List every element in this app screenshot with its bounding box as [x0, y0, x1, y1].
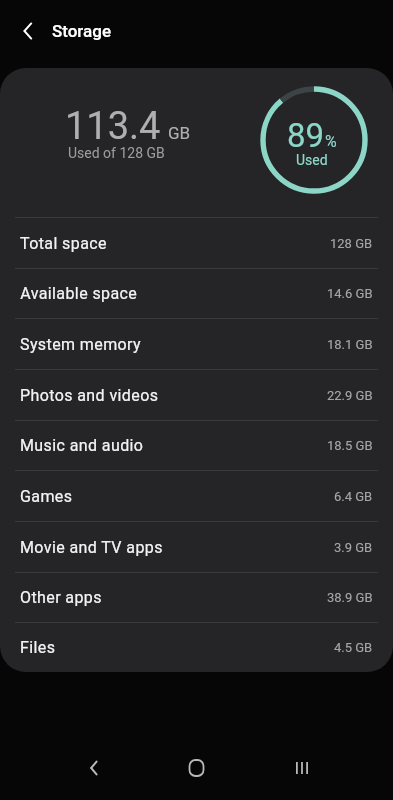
button[interactable]: Total space [0, 218, 393, 268]
staticText: 89 [287, 116, 325, 155]
button[interactable]: Music and audio [0, 421, 393, 470]
staticText: 4.5 GB [334, 640, 373, 655]
button[interactable] [168, 740, 224, 796]
staticText: 3.9 GB [334, 540, 373, 555]
staticText: Total space [20, 234, 107, 253]
staticText: 113.4 [65, 104, 161, 149]
button[interactable]: Movie and TV apps [0, 522, 393, 572]
button[interactable] [10, 13, 46, 49]
staticText: Games [20, 487, 73, 506]
button[interactable]: Files [0, 623, 393, 672]
staticText: Photos and videos [20, 386, 159, 405]
button[interactable]: Other apps [0, 573, 393, 622]
staticText: 6.4 GB [334, 489, 373, 504]
staticText: 38.9 GB [327, 590, 373, 605]
button[interactable] [274, 740, 330, 796]
staticText: 14.6 GB [327, 286, 373, 301]
staticText: Files [20, 638, 56, 657]
button[interactable]: Photos and videos [0, 370, 393, 420]
staticText: Storage [52, 21, 112, 41]
staticText: % [325, 132, 337, 151]
staticText: 22.9 GB [327, 388, 373, 403]
staticText: Available space [20, 284, 137, 303]
staticText: System memory [20, 335, 142, 354]
staticText: 128 GB [330, 236, 373, 251]
staticText: GB [168, 123, 191, 143]
staticText: Music and audio [20, 436, 144, 455]
staticText: Movie and TV apps [20, 538, 163, 557]
button[interactable] [66, 740, 122, 796]
button[interactable]: System memory [0, 319, 393, 369]
staticText: 18.5 GB [327, 438, 373, 453]
button[interactable]: Available space [0, 269, 393, 318]
staticText: Used [296, 152, 328, 168]
staticText: Used of 128 GB [68, 145, 165, 161]
staticText: 18.1 GB [327, 337, 373, 352]
button[interactable]: Games [0, 471, 393, 521]
staticText: Other apps [20, 588, 102, 607]
